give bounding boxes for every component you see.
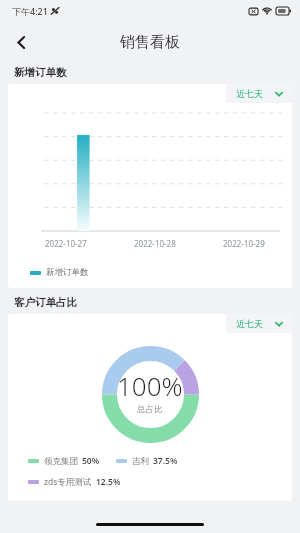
staticText: 吉利	[132, 456, 149, 467]
button[interactable]: 近七天	[226, 84, 292, 103]
staticText: 客户订单占比	[14, 296, 77, 309]
staticText: 近七天	[236, 318, 263, 329]
staticText: 2022-10-29	[223, 238, 265, 249]
staticText: 100%	[117, 368, 183, 403]
button[interactable]: 近七天	[226, 314, 292, 333]
staticText: 50%	[82, 455, 100, 467]
staticText: 12.5%	[96, 476, 121, 488]
staticText: 新增订单数	[46, 267, 89, 278]
staticText: 总占比	[137, 404, 163, 415]
staticText: 2022-10-27	[45, 238, 87, 249]
staticText: zds专用测试	[44, 476, 92, 488]
staticText: 近七天	[236, 88, 263, 99]
staticText: 37.5%	[153, 455, 178, 467]
staticText: 2022-10-28	[134, 238, 176, 249]
staticText: 新增订单数	[14, 66, 67, 79]
button[interactable]: Back	[5, 26, 37, 58]
staticText: 下午4:21	[12, 5, 48, 17]
staticText: 销售看板	[120, 33, 180, 52]
staticText: 领克集团	[44, 456, 78, 467]
